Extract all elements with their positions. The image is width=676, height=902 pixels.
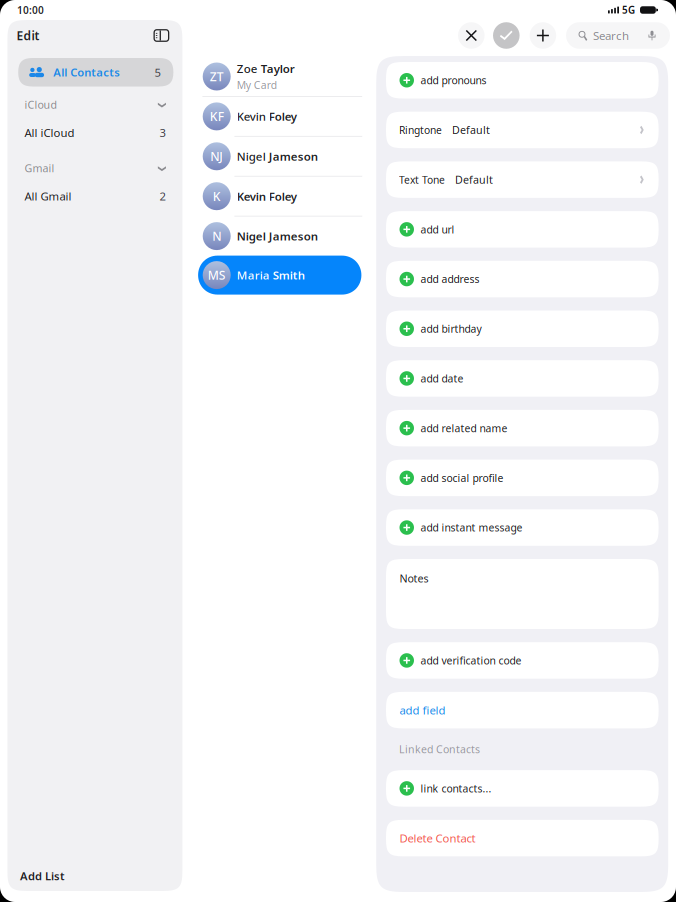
- staticText: add birthday: [420, 322, 481, 336]
- staticText: Linked Contacts: [399, 742, 480, 756]
- staticText: add date: [420, 371, 463, 386]
- staticText: Edit: [16, 27, 39, 44]
- staticText: Foley: [269, 109, 297, 124]
- staticText: Default: [452, 123, 490, 137]
- staticText: 2: [159, 188, 165, 204]
- button[interactable]: add birthday: [386, 310, 659, 347]
- staticText: All Gmail: [24, 188, 71, 204]
- staticText: Delete Contact: [399, 830, 475, 846]
- staticText: link contacts...: [420, 781, 491, 795]
- button[interactable]: All Contacts: [18, 58, 173, 86]
- staticText: Taylor: [261, 61, 295, 76]
- button[interactable]: NJ: [190, 137, 375, 176]
- staticText: Text Tone: [399, 173, 445, 187]
- staticText: Nigel: [237, 228, 269, 244]
- staticText: Add List: [20, 868, 65, 884]
- button[interactable]: Delete Contact: [386, 820, 659, 856]
- staticText: Jameson: [269, 148, 318, 164]
- button[interactable]: All Gmail: [7, 184, 182, 208]
- staticText: 10:00: [17, 3, 44, 17]
- button[interactable]: link contacts...: [386, 770, 659, 807]
- staticText: 5G: [622, 3, 635, 17]
- button[interactable]: Ringtone: [386, 112, 659, 148]
- staticText: Nigel: [237, 148, 269, 164]
- staticText: N: [212, 228, 221, 244]
- button[interactable]: N: [190, 217, 375, 256]
- button[interactable]: add verification code: [386, 642, 659, 679]
- button[interactable]: add date: [386, 360, 659, 397]
- staticText: iCloud: [24, 97, 57, 112]
- button[interactable]: add address: [386, 261, 659, 297]
- staticText: MS: [208, 267, 226, 283]
- button[interactable]: Cancel: [458, 22, 485, 49]
- staticText: 3: [159, 125, 165, 140]
- button[interactable]: add url: [386, 211, 659, 248]
- staticText: 5: [154, 64, 160, 80]
- staticText: add address: [420, 272, 479, 286]
- staticText: Jameson: [269, 228, 318, 244]
- button[interactable]: ZT: [190, 57, 375, 96]
- button[interactable]: Text Tone: [386, 161, 659, 198]
- staticText: Gmail: [24, 161, 54, 175]
- staticText: add instant message: [420, 520, 522, 535]
- staticText: ZT: [210, 68, 224, 85]
- button[interactable]: Search: [566, 22, 670, 49]
- staticText: Default: [455, 172, 493, 187]
- button[interactable]: KF: [190, 97, 375, 136]
- button[interactable]: MS: [190, 256, 375, 295]
- button[interactable]: Add List: [7, 863, 182, 889]
- staticText: NJ: [210, 148, 223, 164]
- button[interactable]: add instant message: [386, 509, 659, 546]
- staticText: Kevin: [237, 188, 269, 204]
- staticText: add social profile: [420, 471, 503, 485]
- button[interactable]: K: [190, 177, 375, 216]
- staticText: Notes: [399, 571, 428, 585]
- staticText: add verification code: [420, 653, 521, 668]
- button[interactable]: Edit: [7, 22, 47, 48]
- staticText: add related name: [420, 421, 507, 435]
- staticText: Zoe: [237, 61, 261, 76]
- staticText: K: [213, 188, 221, 204]
- button[interactable]: Done: [493, 22, 520, 49]
- staticText: Foley: [269, 188, 297, 204]
- button[interactable]: add field: [386, 692, 659, 728]
- staticText: Smith: [273, 267, 305, 283]
- staticText: add field: [399, 702, 445, 718]
- button[interactable]: Gmail: [7, 159, 182, 177]
- staticText: add pronouns: [420, 73, 486, 87]
- button[interactable]: add pronouns: [386, 62, 659, 98]
- button[interactable]: All iCloud: [7, 120, 182, 144]
- button[interactable]: Toggle Sidebar: [145, 22, 182, 48]
- staticText: All Contacts: [53, 65, 120, 80]
- staticText: KF: [210, 108, 224, 125]
- staticText: Search: [593, 28, 629, 43]
- button[interactable]: add social profile: [386, 460, 659, 496]
- staticText: Kevin: [237, 109, 269, 124]
- staticText: My Card: [237, 78, 277, 92]
- staticText: add url: [420, 222, 454, 236]
- button[interactable]: add related name: [386, 410, 659, 446]
- staticText: Ringtone: [399, 123, 442, 137]
- staticText: Maria: [237, 267, 273, 283]
- button[interactable]: Add: [530, 22, 556, 49]
- button[interactable]: iCloud: [7, 95, 182, 113]
- staticText: All iCloud: [24, 125, 74, 140]
